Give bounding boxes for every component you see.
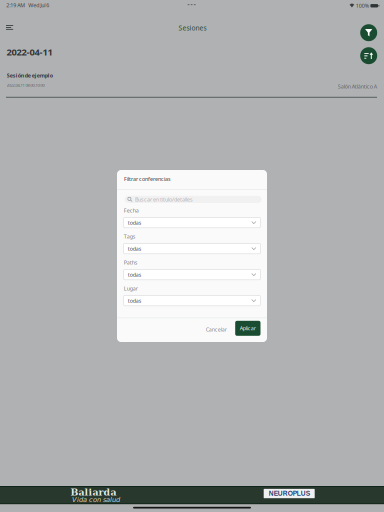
staticText: 2022-04-11 08:00-10:00 (6, 82, 44, 88)
staticText: todas (128, 297, 142, 304)
staticText: Cancelar (206, 326, 227, 333)
button[interactable]: todas (123, 295, 260, 306)
staticText: Buscar en titulo/detalles (135, 196, 193, 203)
button[interactable]: Aplicar (235, 321, 260, 336)
button[interactable]: Menú (3, 22, 16, 33)
staticText: Salón Atlántico A (338, 83, 377, 90)
staticText: 2022-04-11 (7, 46, 53, 58)
staticText: Filtrar conferencias (124, 175, 171, 182)
staticText: todas (128, 271, 142, 278)
staticText: Sesión de ejemplo (7, 72, 53, 79)
staticText: Sesiones (179, 24, 207, 32)
button[interactable]: Ordenar (360, 47, 377, 64)
staticText: Lugar (124, 285, 138, 292)
button[interactable]: todas (123, 243, 260, 254)
staticText: Paths (124, 259, 138, 266)
staticText: Tags (124, 233, 136, 240)
button[interactable]: todas (123, 217, 260, 228)
staticText: Vida con salud (72, 496, 120, 504)
button[interactable]: Filtrar (360, 24, 377, 41)
button[interactable]: Cancelar (202, 321, 230, 337)
staticText: 2:19 AM Wed Jul 6 (6, 2, 49, 9)
staticText: 100% (356, 2, 369, 9)
staticText: NEUROPLUS (269, 490, 310, 497)
staticText: todas (128, 219, 142, 226)
button[interactable]: todas (123, 269, 260, 280)
staticText: Baliarda (71, 487, 117, 498)
staticText: Aplicar (240, 325, 256, 332)
staticText: todas (128, 245, 142, 252)
staticText: Fecha (124, 207, 139, 214)
